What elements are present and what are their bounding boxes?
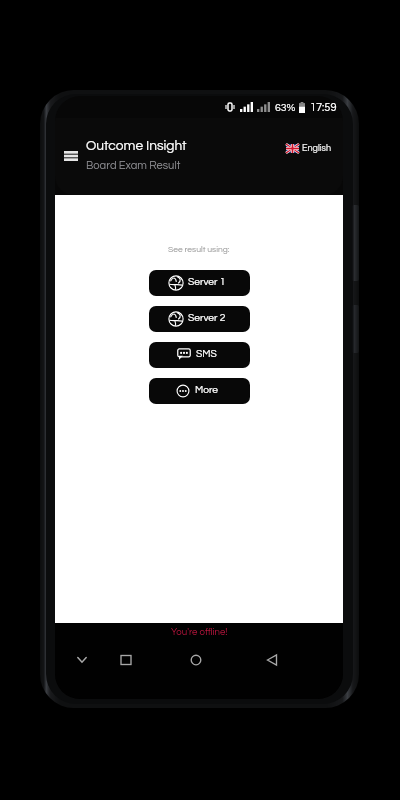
staticText: Server 2 (188, 313, 226, 324)
staticText: Server 1 (188, 277, 226, 288)
staticText: English (302, 144, 332, 153)
staticText: SMS (196, 349, 217, 360)
button[interactable]: More (149, 378, 250, 404)
staticText: More (195, 385, 219, 396)
button[interactable]: Back (256, 644, 288, 676)
staticText: 17:59 (310, 102, 337, 113)
button[interactable]: SMS (149, 342, 250, 368)
button[interactable]: Server 1 (149, 270, 250, 296)
staticText: Outcome Insight (86, 139, 187, 153)
button[interactable]: Server 2 (149, 306, 250, 332)
button[interactable]: Hide keyboard (66, 644, 98, 676)
staticText: 63% (275, 102, 296, 113)
staticText: Board Exam Result (86, 160, 181, 171)
staticText: See result using: (168, 245, 230, 254)
button[interactable]: Open navigation menu (58, 143, 84, 169)
button[interactable]: Recents (110, 644, 142, 676)
button[interactable]: English (283, 141, 335, 156)
staticText: You're offline! (171, 627, 228, 637)
button[interactable]: Home (180, 644, 212, 676)
